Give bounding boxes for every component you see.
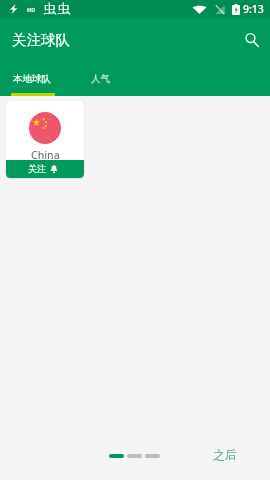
button[interactable]: China	[6, 101, 84, 178]
button[interactable]: 本地球队	[0, 62, 63, 96]
staticText: 关注球队	[12, 31, 70, 49]
staticText: 关注	[28, 163, 46, 174]
staticText: 人气	[91, 73, 110, 85]
button[interactable]: 关注	[6, 160, 84, 178]
staticText: 9:13	[243, 2, 264, 16]
button[interactable]: Page 1	[109, 454, 124, 458]
button[interactable]: 之后	[211, 445, 239, 464]
staticText: 本地球队	[13, 73, 51, 85]
staticText: HD	[27, 6, 36, 13]
button[interactable]: 人气	[63, 62, 137, 96]
staticText: 虫虫	[43, 1, 71, 17]
staticText: 之后	[213, 447, 237, 462]
button[interactable]: Page 3	[145, 454, 160, 458]
staticText: China	[31, 148, 60, 162]
button[interactable]: Search	[238, 26, 266, 54]
button[interactable]: Page 2	[127, 454, 142, 458]
